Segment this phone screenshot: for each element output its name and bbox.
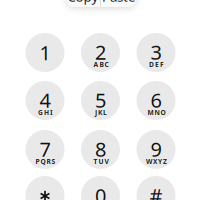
staticText: Paste [102,0,136,5]
staticText: PQRS [35,157,55,166]
staticText: # [149,182,162,200]
button[interactable]: 8 [81,130,120,169]
staticText: JKL [95,108,107,117]
staticText: 8 [95,136,106,162]
staticText: DEF [149,60,164,69]
staticText: 6 [150,87,161,113]
button[interactable]: 1 [25,33,64,72]
button[interactable]: 5 [81,81,120,120]
staticText: 2 [95,39,106,65]
staticText: TUV [93,157,108,166]
staticText: 1 [39,39,50,66]
staticText: ABC [93,60,108,69]
staticText: GHI [38,108,53,117]
staticText: MNO [147,108,165,117]
button[interactable]: Paste [101,0,136,2]
button[interactable]: Pound [136,176,175,200]
button[interactable]: 9 [136,130,175,169]
staticText: 9 [150,136,161,162]
staticText: 5 [95,87,106,113]
staticText: WXYZ [146,157,167,166]
button[interactable]: 3 [136,33,175,72]
staticText: 3 [150,39,161,65]
button[interactable]: Star [25,176,64,200]
button[interactable]: 6 [136,81,175,120]
staticText: 0 [95,182,106,200]
button[interactable]: Copy [65,0,100,2]
staticText: Copy [67,0,98,5]
staticText: 7 [39,136,50,162]
button[interactable]: 7 [25,130,64,169]
staticText: 4 [39,87,50,113]
button[interactable]: 2 [81,33,120,72]
button[interactable]: 0 [81,176,120,200]
button[interactable]: 4 [25,81,64,120]
